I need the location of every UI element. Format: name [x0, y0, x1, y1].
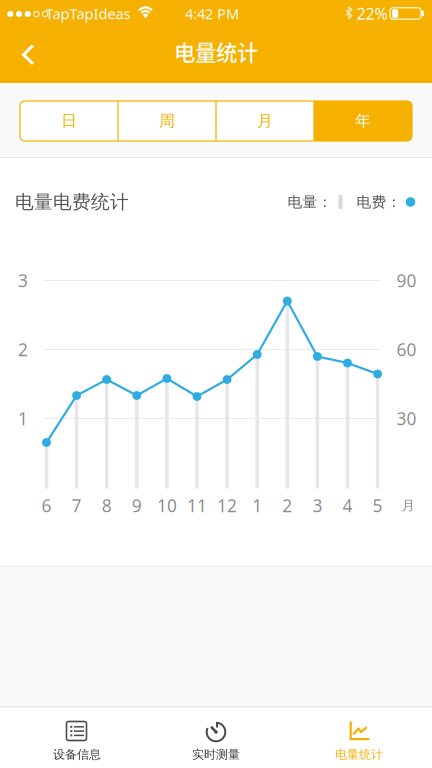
button[interactable]: 日 — [20, 101, 118, 141]
staticText: 11 — [187, 494, 207, 517]
staticText: 电量统计 — [335, 747, 383, 762]
staticText: 电量电费统计 — [15, 190, 129, 213]
staticText: 1 — [252, 494, 262, 517]
staticText: 月 — [401, 497, 414, 514]
staticText: 1 — [18, 407, 28, 430]
staticText: 22% — [356, 3, 387, 24]
staticText: 7 — [72, 494, 82, 517]
staticText: 4:42 PM — [185, 4, 239, 23]
staticText: 2 — [18, 338, 28, 361]
button[interactable]: 年 — [314, 101, 412, 141]
staticText: 9 — [132, 494, 142, 517]
staticText: 90 — [396, 269, 416, 292]
staticText: 2 — [282, 494, 292, 517]
staticText: 6 — [41, 494, 51, 517]
staticText: 年 — [355, 111, 371, 131]
staticText: 电费： — [356, 193, 401, 211]
staticText: 3 — [18, 269, 28, 292]
button[interactable]: Back — [16, 37, 50, 71]
staticText: 8 — [102, 494, 112, 517]
button[interactable]: 周 — [118, 101, 216, 141]
button[interactable]: 月 — [216, 101, 314, 141]
staticText: 3 — [312, 494, 322, 517]
staticText: TapTapIdeas — [45, 4, 130, 23]
staticText: 周 — [159, 111, 175, 131]
staticText: 日 — [61, 111, 77, 131]
staticText: 5 — [373, 494, 383, 517]
staticText: 12 — [217, 494, 237, 517]
staticText: 电量： — [287, 193, 332, 211]
staticText: 月 — [257, 111, 273, 131]
button[interactable]: 电量统计 — [288, 707, 432, 768]
staticText: 实时测量 — [192, 747, 240, 762]
staticText: 设备信息 — [53, 747, 101, 762]
button[interactable]: 实时测量 — [144, 707, 288, 768]
staticText: 10 — [157, 494, 177, 517]
staticText: 30 — [396, 407, 416, 430]
button[interactable]: 设备信息 — [0, 707, 144, 768]
staticText: 60 — [396, 338, 416, 361]
staticText: 电量统计 — [174, 36, 258, 67]
staticText: 4 — [342, 494, 352, 517]
